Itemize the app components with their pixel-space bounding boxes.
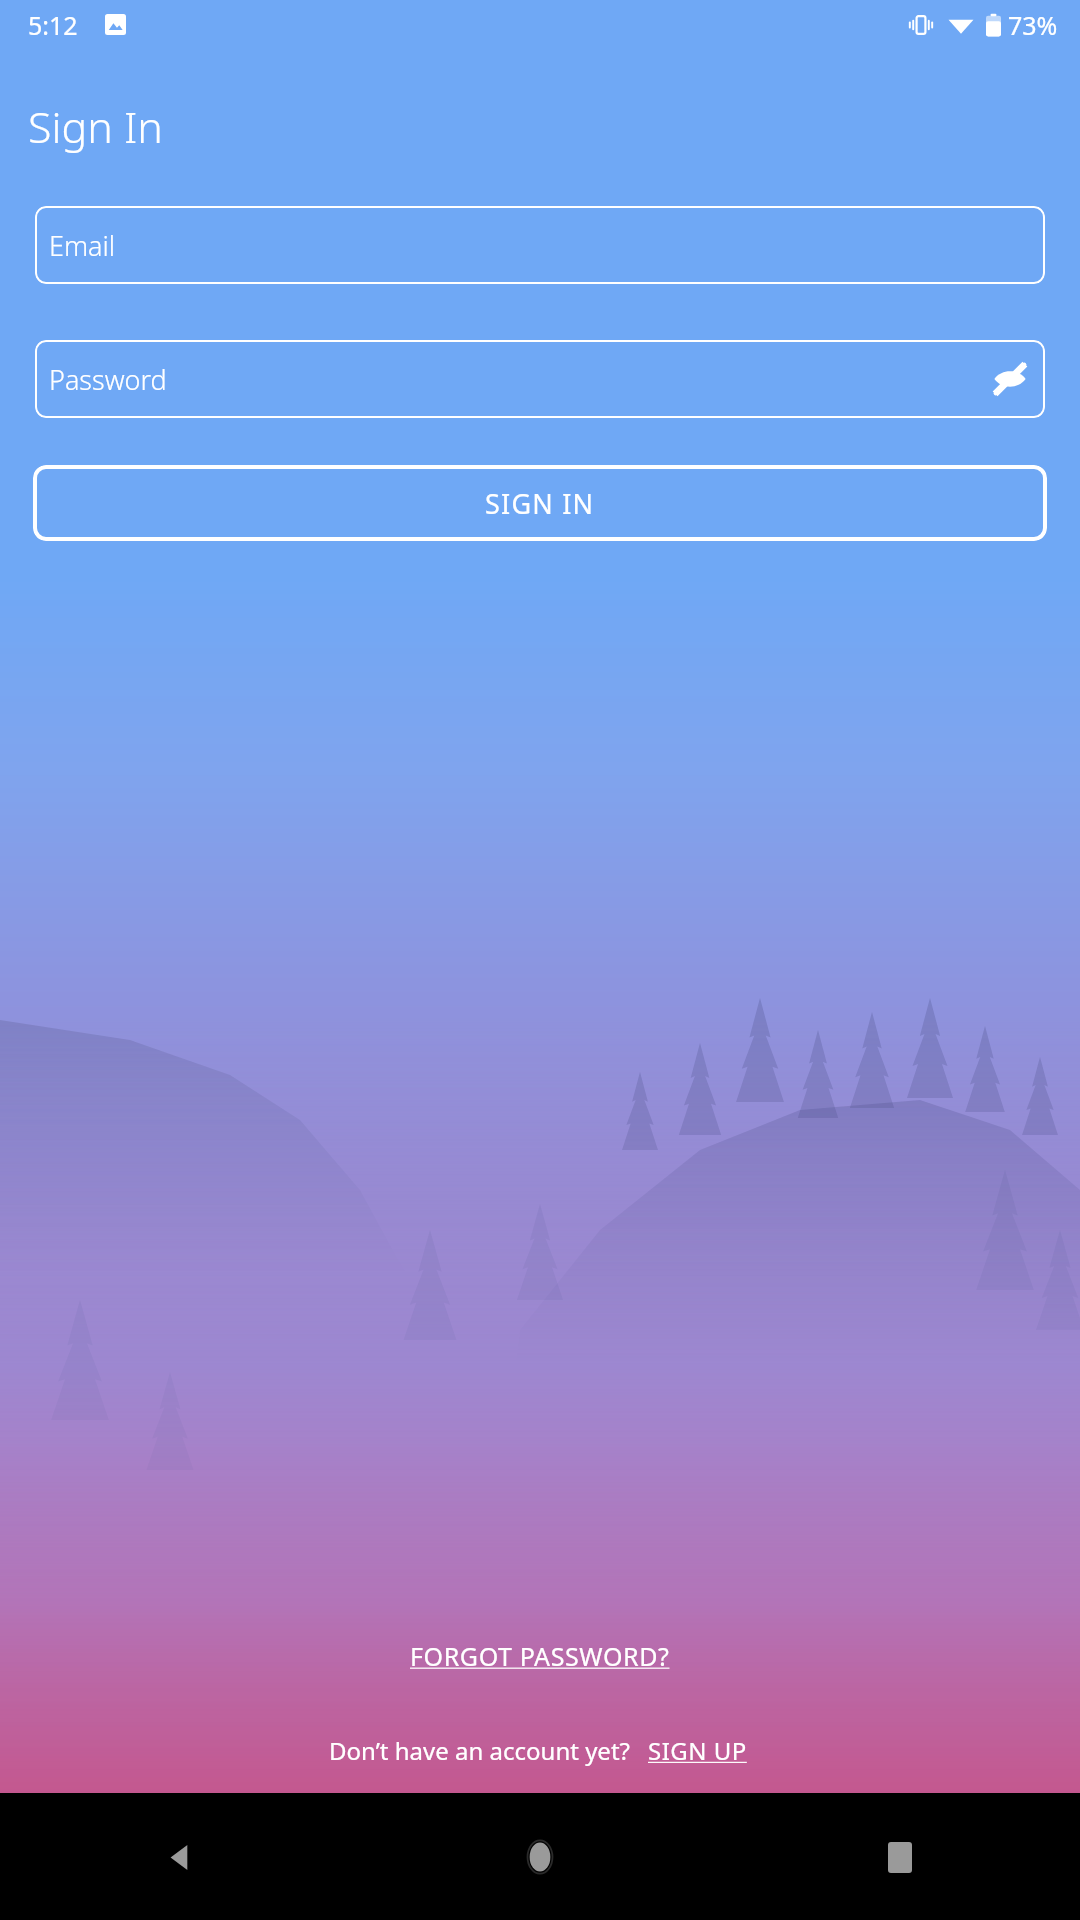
staticText: Email [49,227,116,264]
staticText: Sign In [28,97,163,156]
staticText: 5:12 [28,8,78,42]
button[interactable]: FORGOT PASSWORD? [400,1633,680,1679]
staticText: FORGOT PASSWORD? [410,1639,670,1673]
staticText: Password [49,361,167,398]
button[interactable]: Back [140,1817,220,1897]
button[interactable]: Email [35,206,1045,284]
button[interactable]: SIGN IN [33,465,1047,541]
button[interactable]: Password [35,340,1045,418]
button[interactable]: SIGN UP [644,1730,751,1771]
staticText: SIGN IN [485,485,595,522]
button[interactable]: Show password [987,356,1033,402]
button[interactable]: Recents [860,1817,940,1897]
staticText: SIGN UP [648,1734,747,1767]
staticText: 73% [1008,8,1058,42]
button[interactable]: Home [500,1817,580,1897]
staticText: Don’t have an account yet? [329,1734,630,1767]
